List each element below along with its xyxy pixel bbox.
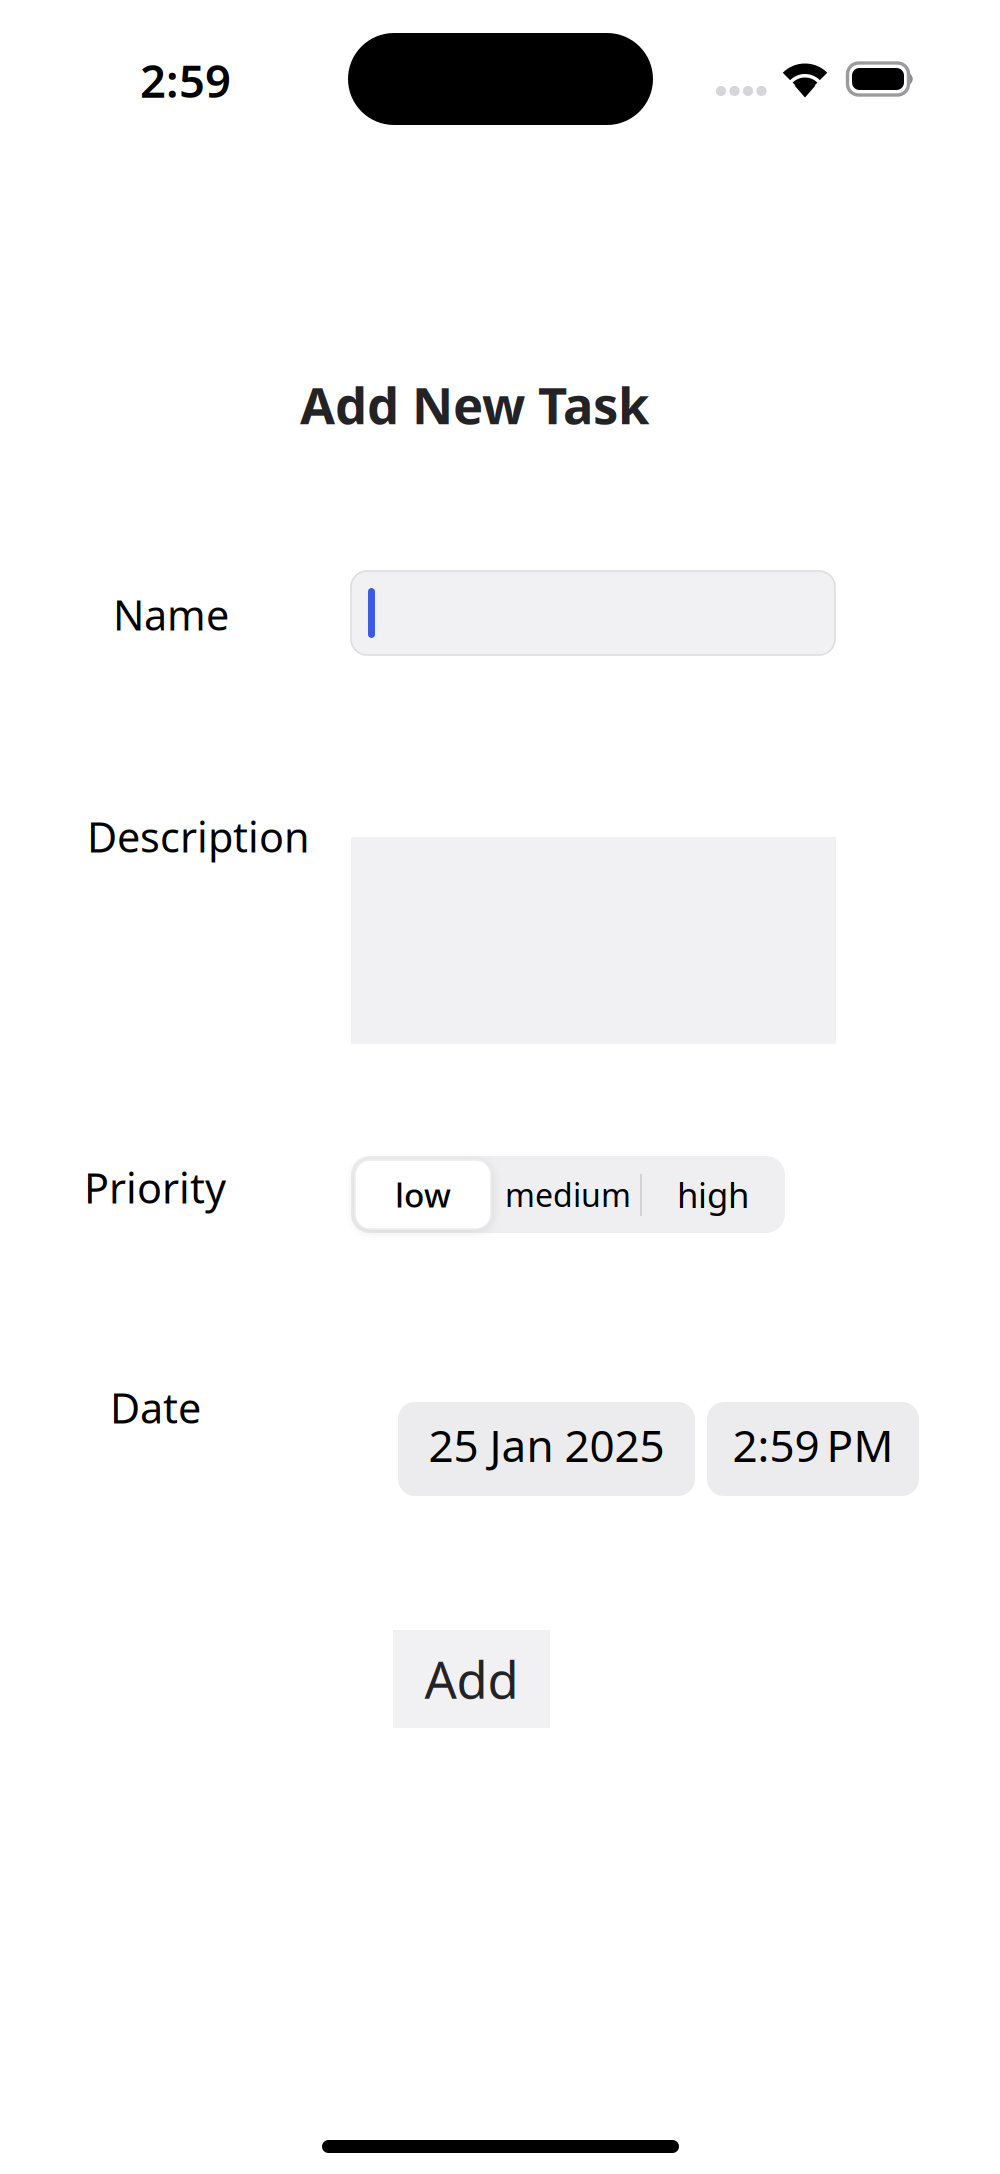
staticText: high bbox=[677, 1171, 749, 1217]
staticText: Add New Task bbox=[300, 371, 649, 438]
staticText: Date bbox=[110, 1380, 201, 1435]
staticText: medium bbox=[505, 1173, 631, 1216]
button[interactable]: medium bbox=[495, 1156, 641, 1233]
button[interactable]: Name text field bbox=[351, 571, 835, 655]
button[interactable]: 25 Jan 2025 bbox=[398, 1402, 695, 1496]
button[interactable]: 2:59 PM bbox=[707, 1402, 919, 1496]
button[interactable]: high bbox=[642, 1156, 784, 1233]
button[interactable]: low bbox=[355, 1160, 491, 1229]
staticText: Add bbox=[424, 1645, 518, 1713]
staticText: Description bbox=[87, 809, 310, 864]
staticText: 2:59 bbox=[140, 50, 231, 110]
staticText: 2:59 PM bbox=[732, 1416, 893, 1474]
staticText: 25 Jan 2025 bbox=[428, 1416, 664, 1474]
staticText: Priority bbox=[84, 1160, 226, 1215]
button[interactable]: Add bbox=[393, 1630, 550, 1728]
staticText: low bbox=[395, 1172, 451, 1217]
staticText: Name bbox=[113, 587, 229, 642]
